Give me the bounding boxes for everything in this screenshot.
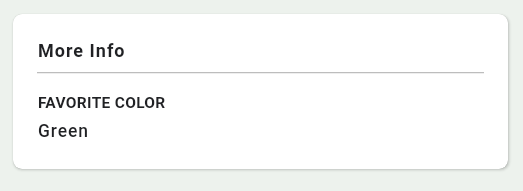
button[interactable]: FAVORITE COLOR <box>13 94 508 142</box>
staticText: More Info <box>38 40 126 61</box>
staticText: FAVORITE COLOR <box>38 94 166 112</box>
staticText: Green <box>38 121 89 142</box>
button[interactable]: More Info <box>38 40 126 61</box>
